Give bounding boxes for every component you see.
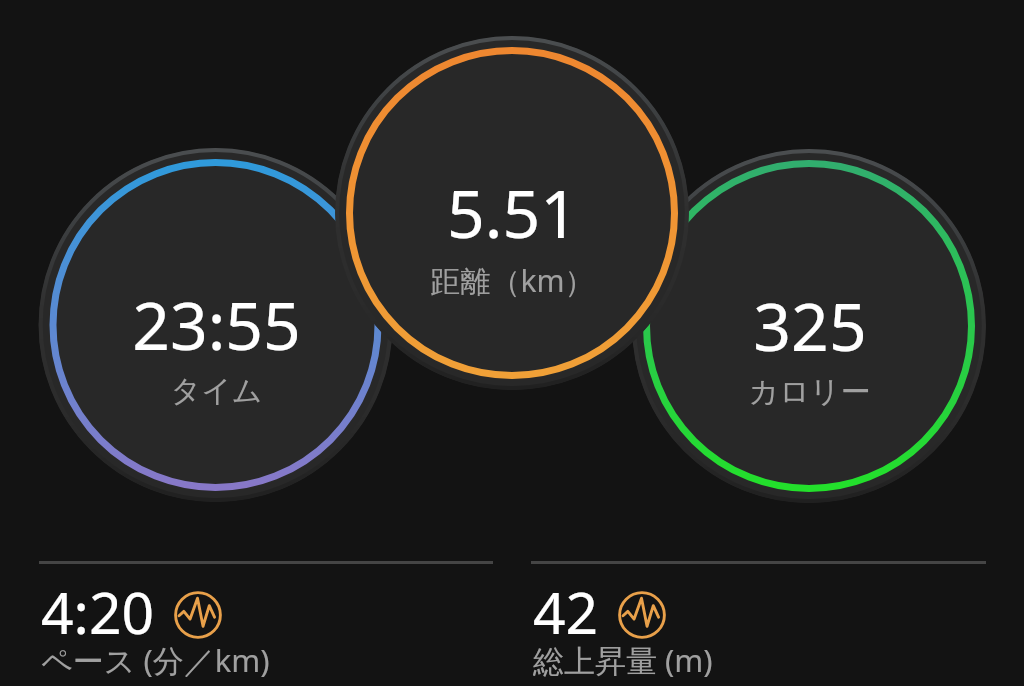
staticText: 距離（km）	[430, 260, 595, 301]
staticText: 23:55	[132, 279, 301, 369]
button[interactable]: 5.51 距離（km）	[335, 36, 688, 389]
button[interactable]: 4:20	[41, 570, 495, 686]
staticText: 42	[533, 573, 599, 651]
button[interactable]: 325 カロリー	[632, 149, 985, 502]
staticText: カロリー	[748, 373, 871, 411]
staticText: タイム	[170, 372, 263, 410]
other: Pace details	[174, 591, 222, 639]
staticText: 総上昇量 (m)	[533, 639, 713, 677]
button[interactable]: 42	[533, 570, 988, 686]
staticText: ペース (分／km)	[41, 639, 270, 677]
button[interactable]: 23:55 タイム	[39, 148, 392, 501]
staticText: 325	[753, 280, 867, 370]
staticText: 5.51	[447, 167, 578, 257]
staticText: 4:20	[41, 573, 155, 651]
other: Elevation gain details	[618, 591, 666, 639]
